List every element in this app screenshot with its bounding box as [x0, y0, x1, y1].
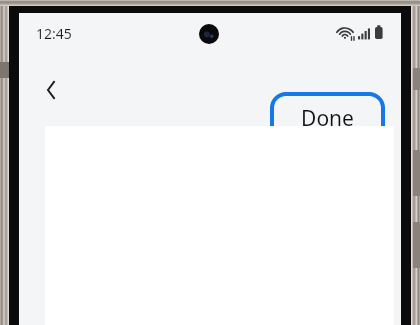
button[interactable]: Done [274, 96, 381, 141]
staticText: Done [301, 104, 354, 133]
button[interactable]: Back [31, 69, 73, 111]
staticText: 12:45 [36, 24, 72, 43]
